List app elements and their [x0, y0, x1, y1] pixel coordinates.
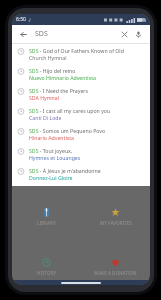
button[interactable]: Clear: [119, 29, 130, 40]
button[interactable]: SDS - God of Our Fathers Known of Old: [12, 44, 150, 64]
button[interactable]: Voice search: [133, 29, 144, 40]
button[interactable]: Back: [12, 25, 150, 43]
button[interactable]: SDS - Hijo del reino: [12, 64, 150, 84]
staticText: Hymnes et Louanges: [29, 154, 81, 161]
staticText: 6:50: [16, 16, 26, 23]
staticText: SDS - God of Our Fathers Known of Old: [29, 47, 124, 54]
staticText: SDS - I Need the Prayers: [29, 87, 88, 94]
button[interactable]: SDS - I cast all my cares upon you: [12, 104, 150, 124]
staticText: Donnez-Lui Gloire: [29, 174, 73, 181]
button[interactable]: MY FAVORITES: [81, 204, 150, 230]
button[interactable]: SDS - I Need the Prayers: [12, 84, 150, 104]
staticText: Hinario Adventista: [29, 134, 75, 141]
staticText: Canti Di Lode: [29, 114, 62, 121]
staticText: SDS: [35, 29, 48, 39]
staticText: SDA Hymnal: [29, 94, 59, 101]
staticText: HISTORY: [37, 270, 57, 276]
button[interactable]: MAKE A DONATION: [81, 254, 150, 280]
staticText: Church Hymnal: [29, 54, 67, 61]
staticText: LIBRARY: [37, 220, 56, 226]
button[interactable]: HISTORY: [12, 254, 81, 280]
button[interactable]: SDS - Tout joyeux,: [12, 144, 150, 164]
staticText: SDS - Tout joyeux,: [29, 147, 73, 154]
staticText: SDS - Somos um Pequeno Povo: [29, 127, 106, 134]
staticText: 86%: [137, 17, 146, 23]
button[interactable]: Home gesture: [61, 282, 101, 284]
staticText: SDS - I cast all my cares upon you: [29, 107, 111, 114]
staticText: Nuevo Himnario Adventista: [29, 74, 96, 81]
staticText: SDS - À Jésus je m'abandonne: [29, 167, 101, 174]
staticText: SDS - Hijo del reino: [29, 67, 76, 74]
staticText: MAKE A DONATION: [94, 270, 137, 276]
button[interactable]: Back: [18, 29, 29, 40]
button[interactable]: SDS - Somos um Pequeno Povo: [12, 124, 150, 144]
button[interactable]: LIBRARY: [12, 204, 81, 230]
staticText: MY FAVORITES: [100, 220, 132, 226]
button[interactable]: SDS - À Jésus je m'abandonne: [12, 164, 150, 184]
